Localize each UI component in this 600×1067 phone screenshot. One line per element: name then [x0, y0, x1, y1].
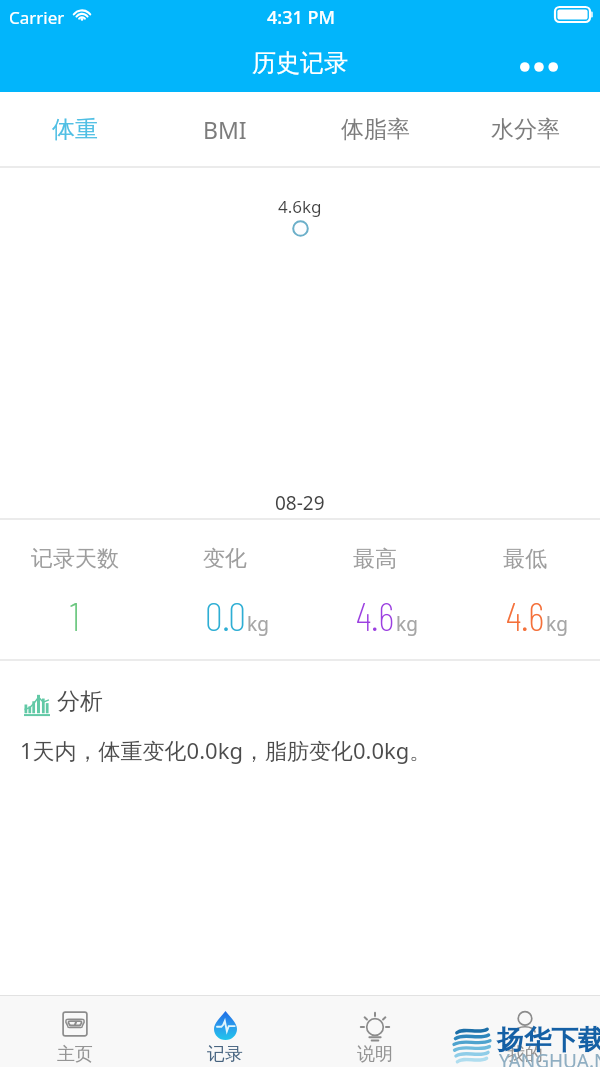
staticText: kg	[247, 611, 269, 637]
staticText: 1天内，体重变化0.0kg，脂肪变化0.0kg。	[20, 735, 432, 765]
staticText: 记录天数	[31, 545, 119, 573]
button[interactable]: 水分率	[450, 92, 600, 166]
staticText: 4:31 PM	[267, 5, 335, 30]
button[interactable]: 体脂率	[300, 92, 450, 166]
staticText: kg	[546, 611, 568, 637]
staticText: 4.6kg	[278, 195, 322, 218]
staticText: 变化	[203, 545, 247, 573]
staticText: 1	[70, 591, 80, 639]
staticText: 扬华下载	[497, 1023, 600, 1057]
staticText: 体脂率	[341, 115, 410, 144]
button[interactable]: More options	[512, 40, 566, 94]
staticText: 水分率	[491, 115, 560, 144]
button[interactable]: BMI	[150, 92, 300, 166]
button[interactable]: 记录	[150, 995, 300, 1067]
staticText: Carrier	[9, 6, 65, 29]
button[interactable]: 主页	[0, 995, 150, 1067]
staticText: 0.0	[205, 591, 246, 639]
staticText: 4.6	[356, 591, 395, 639]
staticText: 记录	[207, 1043, 243, 1066]
button[interactable]: 体重	[0, 92, 150, 166]
staticText: 4.6	[506, 591, 545, 639]
staticText: BMI	[203, 114, 247, 145]
button[interactable]: 说明	[300, 995, 450, 1067]
staticText: 分析	[57, 687, 103, 716]
staticText: 体重	[52, 115, 98, 144]
staticText: 最高	[353, 545, 397, 573]
staticText: 说明	[357, 1043, 393, 1066]
staticText: 我的	[507, 1043, 543, 1066]
staticText: kg	[396, 611, 418, 637]
staticText: 主页	[57, 1043, 93, 1066]
staticText: 08-29	[275, 490, 325, 516]
staticText: 历史记录	[252, 48, 348, 78]
staticText: YANGHUA.NET	[499, 1048, 600, 1067]
staticText: 最低	[503, 545, 547, 573]
button[interactable]: 我的	[450, 995, 600, 1067]
